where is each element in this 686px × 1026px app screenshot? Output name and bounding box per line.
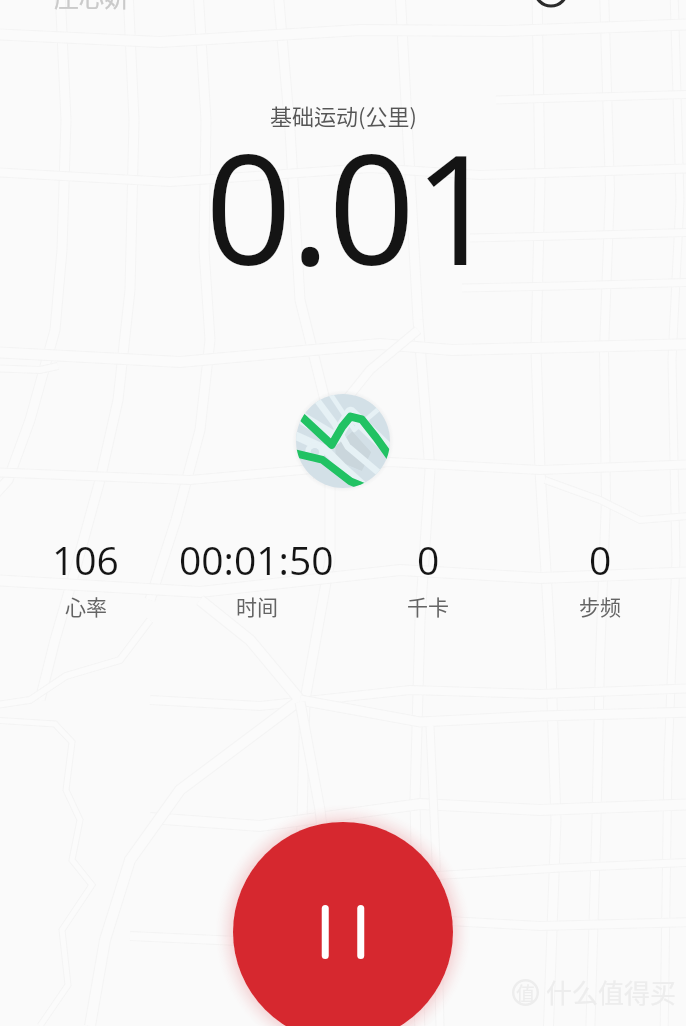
staticText: 时间 bbox=[236, 591, 278, 621]
staticText: 基础运动(公里) bbox=[270, 99, 417, 131]
staticText: 步频 bbox=[579, 591, 621, 621]
staticText: 值 bbox=[516, 979, 536, 1006]
staticText: 心率 bbox=[65, 591, 107, 621]
staticText: 千卡 bbox=[407, 591, 449, 621]
staticText: 00:01:50 bbox=[179, 533, 334, 586]
staticText: 0.01 bbox=[205, 103, 499, 310]
staticText: 庄心妍 bbox=[54, 0, 130, 14]
staticText: 什么值得买 bbox=[546, 973, 677, 1011]
staticText: 0 bbox=[417, 533, 440, 586]
button[interactable]: Pause bbox=[233, 822, 453, 1026]
staticText: 0 bbox=[589, 533, 612, 586]
staticText: 106 bbox=[52, 533, 119, 586]
